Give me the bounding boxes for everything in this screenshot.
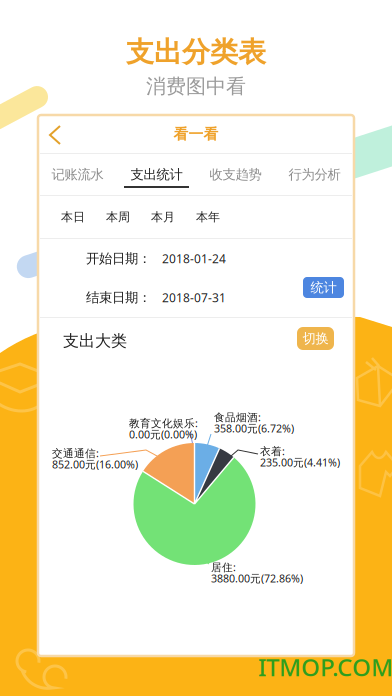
button[interactable]: 本年 — [195, 196, 221, 238]
staticText: 358.00元(6.72%) — [214, 421, 294, 435]
staticText: 切换 — [302, 330, 328, 347]
staticText: 235.00元(4.41%) — [260, 455, 340, 469]
staticText: 本年 — [196, 210, 220, 224]
button[interactable]: 统计 — [303, 277, 344, 298]
staticText: 结束日期： — [86, 289, 151, 306]
staticText: 852.00元(16.00%) — [52, 457, 138, 471]
staticText: 0.00元(0.00%) — [129, 427, 197, 441]
staticText: 开始日期： — [86, 250, 151, 267]
staticText: 本周 — [106, 210, 130, 224]
staticText: 本日 — [61, 210, 85, 224]
staticText: 看一看 — [173, 125, 218, 143]
staticText: 统计 — [310, 279, 336, 296]
button[interactable]: 支出统计 — [117, 154, 196, 195]
button[interactable]: 收支趋势 — [196, 154, 275, 195]
button[interactable]: 记账流水 — [38, 154, 117, 195]
button[interactable]: 切换 — [297, 327, 334, 350]
staticText: 衣着: — [260, 444, 285, 458]
button[interactable]: 行为分析 — [275, 154, 354, 195]
staticText: ITMOP.COM — [258, 651, 392, 683]
staticText: 支出分类表 — [126, 35, 266, 69]
staticText: 教育文化娱乐: — [129, 416, 198, 430]
button[interactable]: 本日 — [60, 196, 86, 238]
staticText: 本月 — [151, 210, 175, 224]
button[interactable]: Back — [38, 115, 76, 153]
staticText: 2018-07-31 — [162, 289, 226, 305]
staticText: 行为分析 — [288, 166, 340, 183]
staticText: 交通通信: — [52, 446, 99, 460]
staticText: 记账流水 — [51, 166, 103, 183]
staticText: 3880.00元(72.86%) — [211, 571, 303, 585]
staticText: 支出统计 — [130, 166, 182, 183]
staticText: 支出大类 — [63, 331, 127, 351]
button[interactable]: 本周 — [105, 196, 131, 238]
staticText: 消费图中看 — [146, 74, 246, 99]
staticText: 食品烟酒: — [214, 410, 261, 424]
staticText: 收支趋势 — [209, 166, 261, 183]
staticText: 2018-01-24 — [162, 250, 226, 266]
button[interactable]: 本月 — [150, 196, 176, 238]
staticText: 居住: — [211, 560, 236, 574]
